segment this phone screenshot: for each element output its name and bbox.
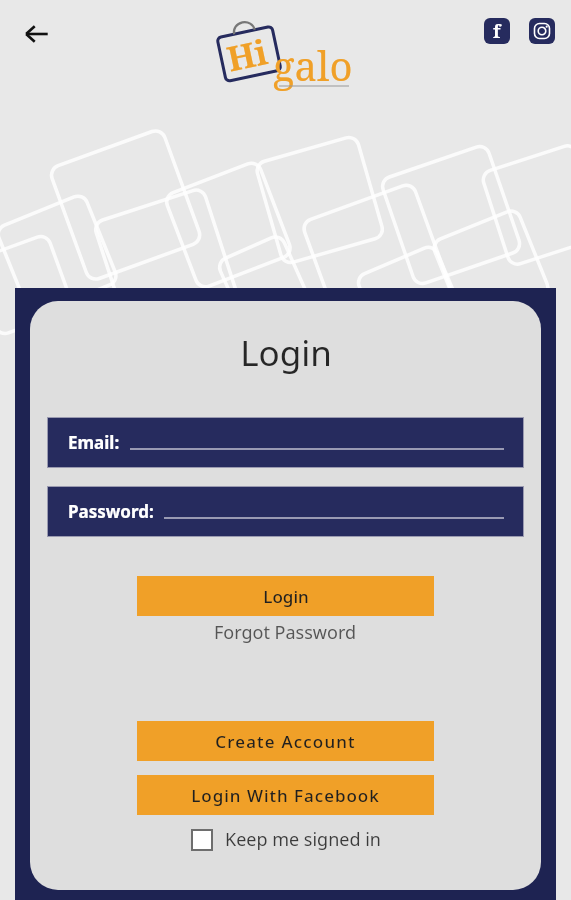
staticText: Create Account [215,730,356,753]
button[interactable]: Back [14,12,58,56]
staticText: galo [273,38,353,92]
staticText: Hi [223,28,271,82]
button[interactable]: Instagram [529,18,555,44]
button[interactable]: Password: [47,486,524,537]
button[interactable]: Forgot Password [214,620,357,645]
button[interactable]: Login With Facebook [137,775,434,815]
staticText: Password: [68,500,154,523]
button[interactable]: Facebook [484,18,510,44]
button[interactable]: Email: [47,417,524,468]
button[interactable]: Keep me signed in [191,827,381,852]
staticText: Login With Facebook [191,784,380,807]
staticText: Keep me signed in [225,827,381,852]
staticText: Login [263,585,309,608]
staticText: f [493,19,501,44]
staticText: Login [240,329,332,377]
button[interactable]: Login [137,576,434,616]
button[interactable]: Higalo logo [211,6,361,98]
button[interactable]: Create Account [137,721,434,761]
staticText: Email: [68,431,120,454]
